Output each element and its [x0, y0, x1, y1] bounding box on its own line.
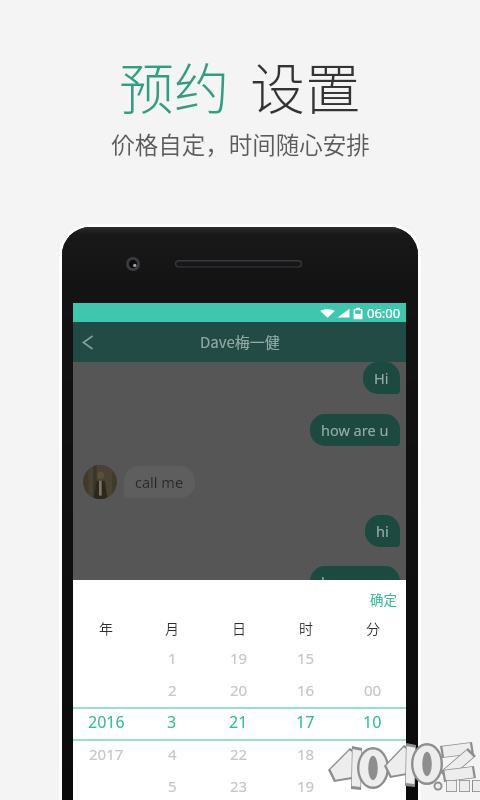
button[interactable]: 确定	[361, 584, 406, 614]
staticText: call me	[135, 472, 184, 492]
staticText: 20	[230, 680, 248, 700]
staticText: 月	[165, 618, 179, 638]
staticText: 3	[167, 711, 177, 733]
button[interactable]: Back	[73, 322, 111, 362]
staticText: 分	[366, 618, 380, 638]
staticText: 10	[363, 711, 382, 733]
staticText: 2016	[88, 711, 125, 733]
staticText: 20	[364, 744, 382, 764]
staticText: 1	[168, 648, 177, 668]
staticText: Dave梅一健	[200, 331, 280, 353]
staticText: 22	[230, 744, 248, 764]
staticText: 确定	[370, 589, 397, 609]
staticText: 设置	[250, 45, 361, 125]
staticText: 日	[232, 618, 246, 638]
button[interactable]: how are u	[310, 414, 400, 446]
button[interactable]: Hi	[363, 362, 400, 394]
staticText: 预约	[119, 45, 230, 125]
staticText: 时	[299, 618, 313, 638]
staticText: 2	[168, 680, 177, 700]
button[interactable]: how are u	[310, 566, 400, 598]
staticText: 15	[297, 648, 315, 668]
staticText: 23	[230, 776, 248, 796]
staticText: how are u	[321, 572, 389, 592]
staticText: 价格自定，时间随心安排	[111, 127, 370, 161]
staticText: 4	[168, 744, 177, 764]
staticText: 18	[297, 744, 315, 764]
staticText: 00	[364, 680, 382, 700]
staticText: 19	[230, 648, 248, 668]
staticText: 21	[229, 711, 248, 733]
staticText: 5	[168, 776, 177, 796]
staticText: 19	[297, 776, 315, 796]
staticText: 06:00	[367, 304, 401, 322]
staticText: 2017	[89, 744, 124, 764]
button[interactable]: call me	[124, 466, 195, 498]
staticText: hi	[376, 521, 389, 541]
staticText: Hi	[374, 368, 389, 388]
button[interactable]: hi	[365, 515, 400, 547]
staticText: how are u	[321, 420, 389, 440]
staticText: 16	[297, 680, 315, 700]
staticText: 17	[296, 711, 315, 733]
staticText: 年	[99, 618, 113, 638]
